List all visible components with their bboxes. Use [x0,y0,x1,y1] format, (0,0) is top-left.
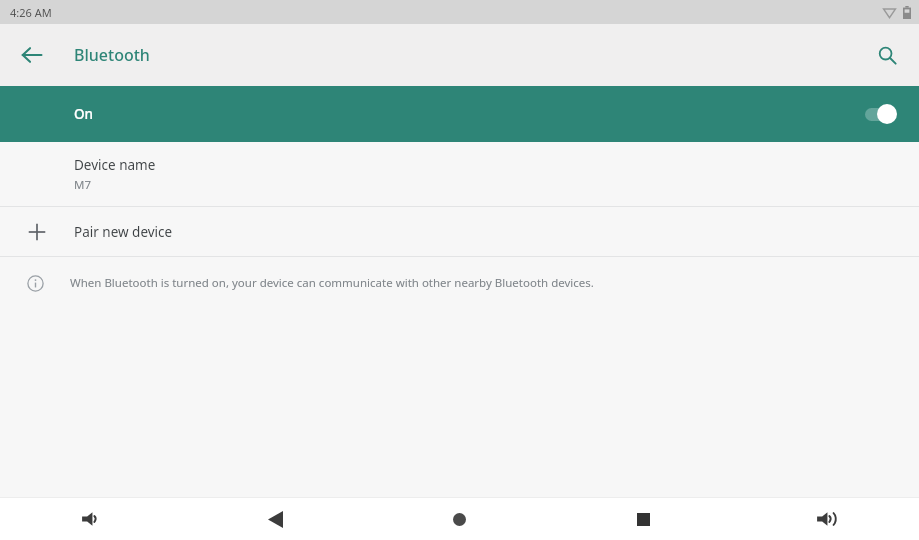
staticText: Pair new device [74,223,173,241]
button[interactable]: Back [10,33,54,77]
button[interactable]: Pair new device [0,207,919,256]
staticText: On [74,105,94,123]
staticText: Bluetooth [74,44,150,66]
button[interactable]: Back [183,498,367,540]
button[interactable]: Home [367,498,551,540]
button[interactable]: Recent apps [551,498,735,540]
staticText: Device name [74,156,156,174]
staticText: M7 [74,177,92,193]
staticText: 4:26 AM [10,5,52,20]
button[interactable]: Search [865,33,909,77]
button[interactable]: Volume up [735,498,919,540]
button[interactable]: On [0,86,919,142]
staticText: When Bluetooth is turned on, your device… [70,275,594,291]
button[interactable]: Device name [0,142,919,206]
button[interactable]: Volume down [0,498,183,540]
